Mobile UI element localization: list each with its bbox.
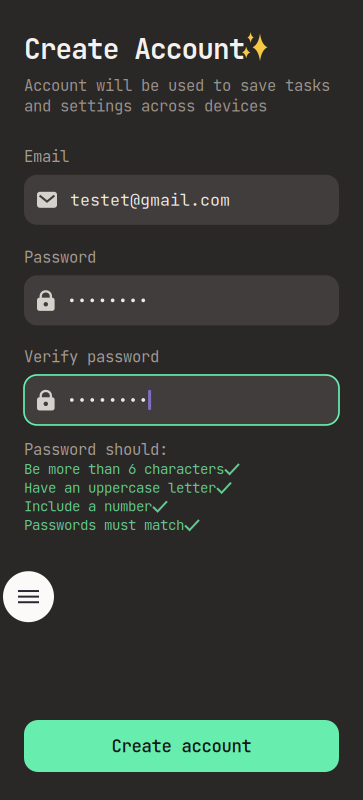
button[interactable] [24, 275, 339, 325]
button[interactable]: Create account [24, 720, 339, 772]
button[interactable] [24, 375, 339, 425]
staticText: Email [24, 146, 69, 167]
staticText: Be more than 6 characters [24, 460, 224, 478]
staticText: Account will be used to save tasks and s… [24, 75, 330, 116]
staticText: Password should: [24, 439, 168, 460]
staticText: Create Account [24, 31, 246, 67]
staticText: testet@gmail.com [70, 189, 230, 211]
staticText: Have an uppercase letter [24, 478, 216, 497]
staticText: Password [24, 247, 96, 267]
staticText: Include a number [24, 497, 152, 516]
staticText: Verify password [24, 346, 159, 367]
button[interactable]: Menu [3, 571, 54, 622]
button[interactable]: testet@gmail.com [24, 175, 339, 225]
staticText: Passwords must match [24, 515, 184, 534]
staticText: Create account [111, 735, 251, 757]
